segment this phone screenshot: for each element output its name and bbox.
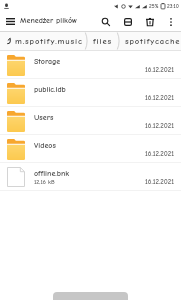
button[interactable]: files [88, 31, 117, 51]
button[interactable]: Videos [0, 135, 181, 163]
staticText: 16.12.2021 [145, 178, 174, 186]
button[interactable]: Open navigation menu [0, 12, 20, 31]
button[interactable]: Users [0, 107, 181, 135]
staticText: 25% [149, 3, 159, 9]
button[interactable]: m.spotify.music [0, 31, 85, 51]
button[interactable]: Storage [0, 51, 181, 79]
staticText: 12,16 kB [34, 179, 55, 186]
button[interactable]: Search [99, 12, 113, 31]
button[interactable]: public.ldb [0, 79, 181, 107]
button[interactable]: offline.bnk [0, 163, 181, 191]
staticText: public.ldb [34, 85, 66, 94]
staticText: 16.12.2021 [145, 150, 174, 158]
staticText: 16.12.2021 [145, 66, 174, 74]
staticText: 23:10 [167, 3, 179, 9]
button[interactable]: More options [164, 12, 178, 31]
staticText: Videos [34, 141, 56, 150]
staticText: Menedżer plików [20, 16, 77, 25]
staticText: files [93, 36, 112, 46]
staticText: spotifycache [125, 36, 180, 46]
staticText: 16.12.2021 [145, 94, 174, 102]
button[interactable]: spotifycache [120, 31, 181, 51]
staticText: Storage [34, 57, 61, 66]
staticText: m.spotify.music [15, 36, 83, 46]
staticText: 16.12.2021 [145, 122, 174, 130]
staticText: Users [34, 113, 54, 122]
button[interactable]: Delete [143, 12, 157, 31]
staticText: offline.bnk [34, 169, 70, 178]
button[interactable]: Dual pane view [121, 12, 135, 31]
